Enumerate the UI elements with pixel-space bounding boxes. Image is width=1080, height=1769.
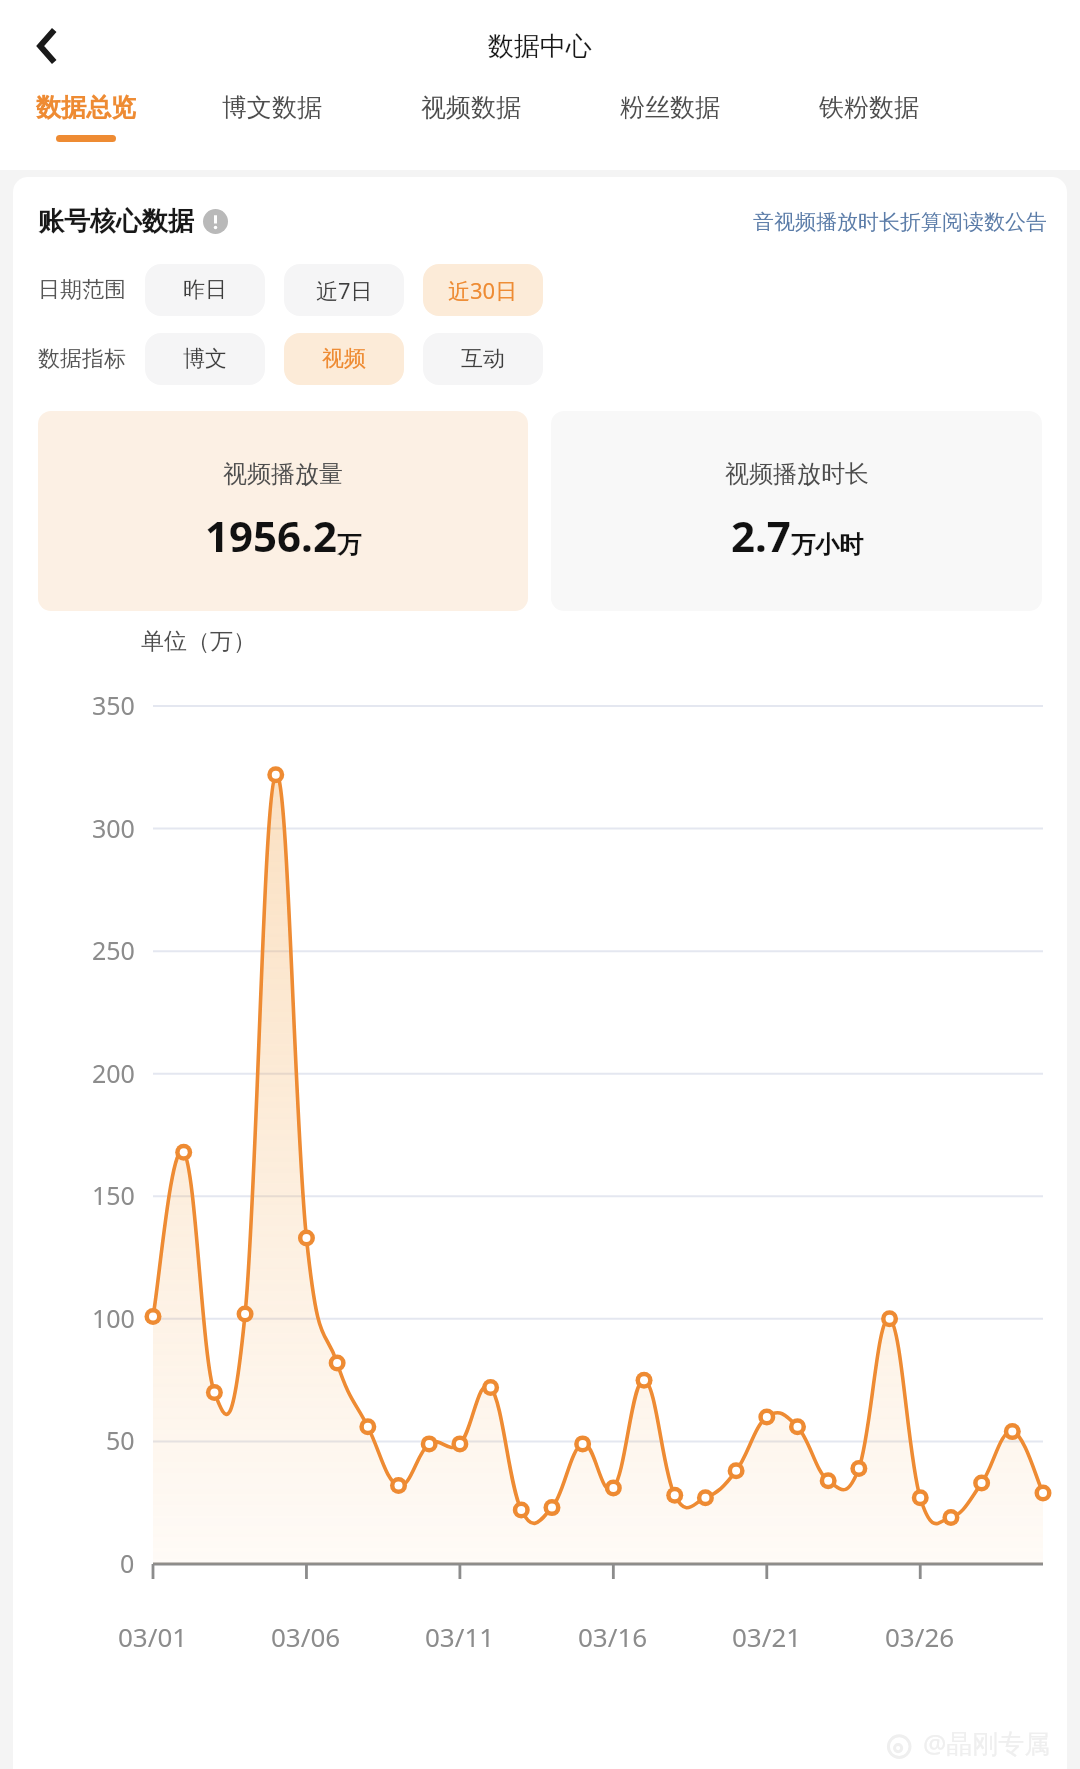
button[interactable]: 昨日 [145,264,265,316]
staticText: 账号核心数据 [38,205,194,238]
staticText: 博文 [183,345,227,373]
staticText: 0 [120,1546,135,1580]
staticText: 03/16 [578,1619,648,1654]
button[interactable]: 博文 [145,333,265,385]
button[interactable]: 视频数据 [371,92,570,170]
staticText: 近7日 [316,275,373,305]
staticText: 博文数据 [222,92,322,123]
staticText: 视频数据 [421,92,521,123]
staticText: 03/11 [425,1619,495,1654]
staticText: 互动 [461,345,505,373]
staticText: 150 [92,1178,135,1212]
staticText: 100 [92,1301,135,1335]
staticText: 03/06 [271,1619,341,1654]
button[interactable]: 互动 [423,333,543,385]
staticText: 03/21 [732,1619,802,1654]
staticText: 单位（万） [141,627,256,656]
staticText: 1956.2 [205,507,337,564]
staticText: @晶刚专属 [923,1725,1051,1761]
staticText: 数据中心 [488,30,592,63]
button[interactable]: 博文数据 [172,92,371,170]
staticText: 视频播放量 [223,459,343,489]
staticText: 日期范围 [38,276,126,304]
staticText: 昨日 [183,276,227,304]
button[interactable]: 粉丝数据 [570,92,769,170]
button[interactable]: 视频播放量 [38,411,528,611]
staticText: 音视频播放时长折算阅读数公告 [753,209,1047,235]
staticText: 粉丝数据 [620,92,720,123]
staticText: 2.7 [731,507,791,564]
staticText: 万小时 [791,530,863,560]
staticText: 300 [92,811,135,845]
staticText: 250 [92,933,135,967]
staticText: 视频播放时长 [725,459,869,489]
staticText: 万 [337,530,361,560]
staticText: 350 [92,688,135,722]
button[interactable]: 视频 [284,333,404,385]
button[interactable]: 近30日 [423,264,543,316]
button[interactable]: 近7日 [284,264,404,316]
staticText: 03/01 [118,1619,188,1654]
button[interactable]: 数据总览 [0,92,172,170]
button[interactable]: 音视频播放时长折算阅读数公告 [753,209,1047,235]
button[interactable]: 视频播放时长 [551,411,1042,611]
staticText: 200 [92,1056,135,1090]
button[interactable]: Back [12,14,76,78]
button[interactable]: Info [203,209,228,234]
staticText: 近30日 [448,275,518,305]
staticText: 03/26 [885,1619,955,1654]
staticText: 视频 [322,345,366,373]
staticText: 铁粉数据 [819,92,919,123]
button[interactable]: 铁粉数据 [769,92,968,170]
staticText: 数据指标 [38,345,126,373]
staticText: 数据总览 [36,92,136,123]
staticText: 50 [106,1423,135,1457]
